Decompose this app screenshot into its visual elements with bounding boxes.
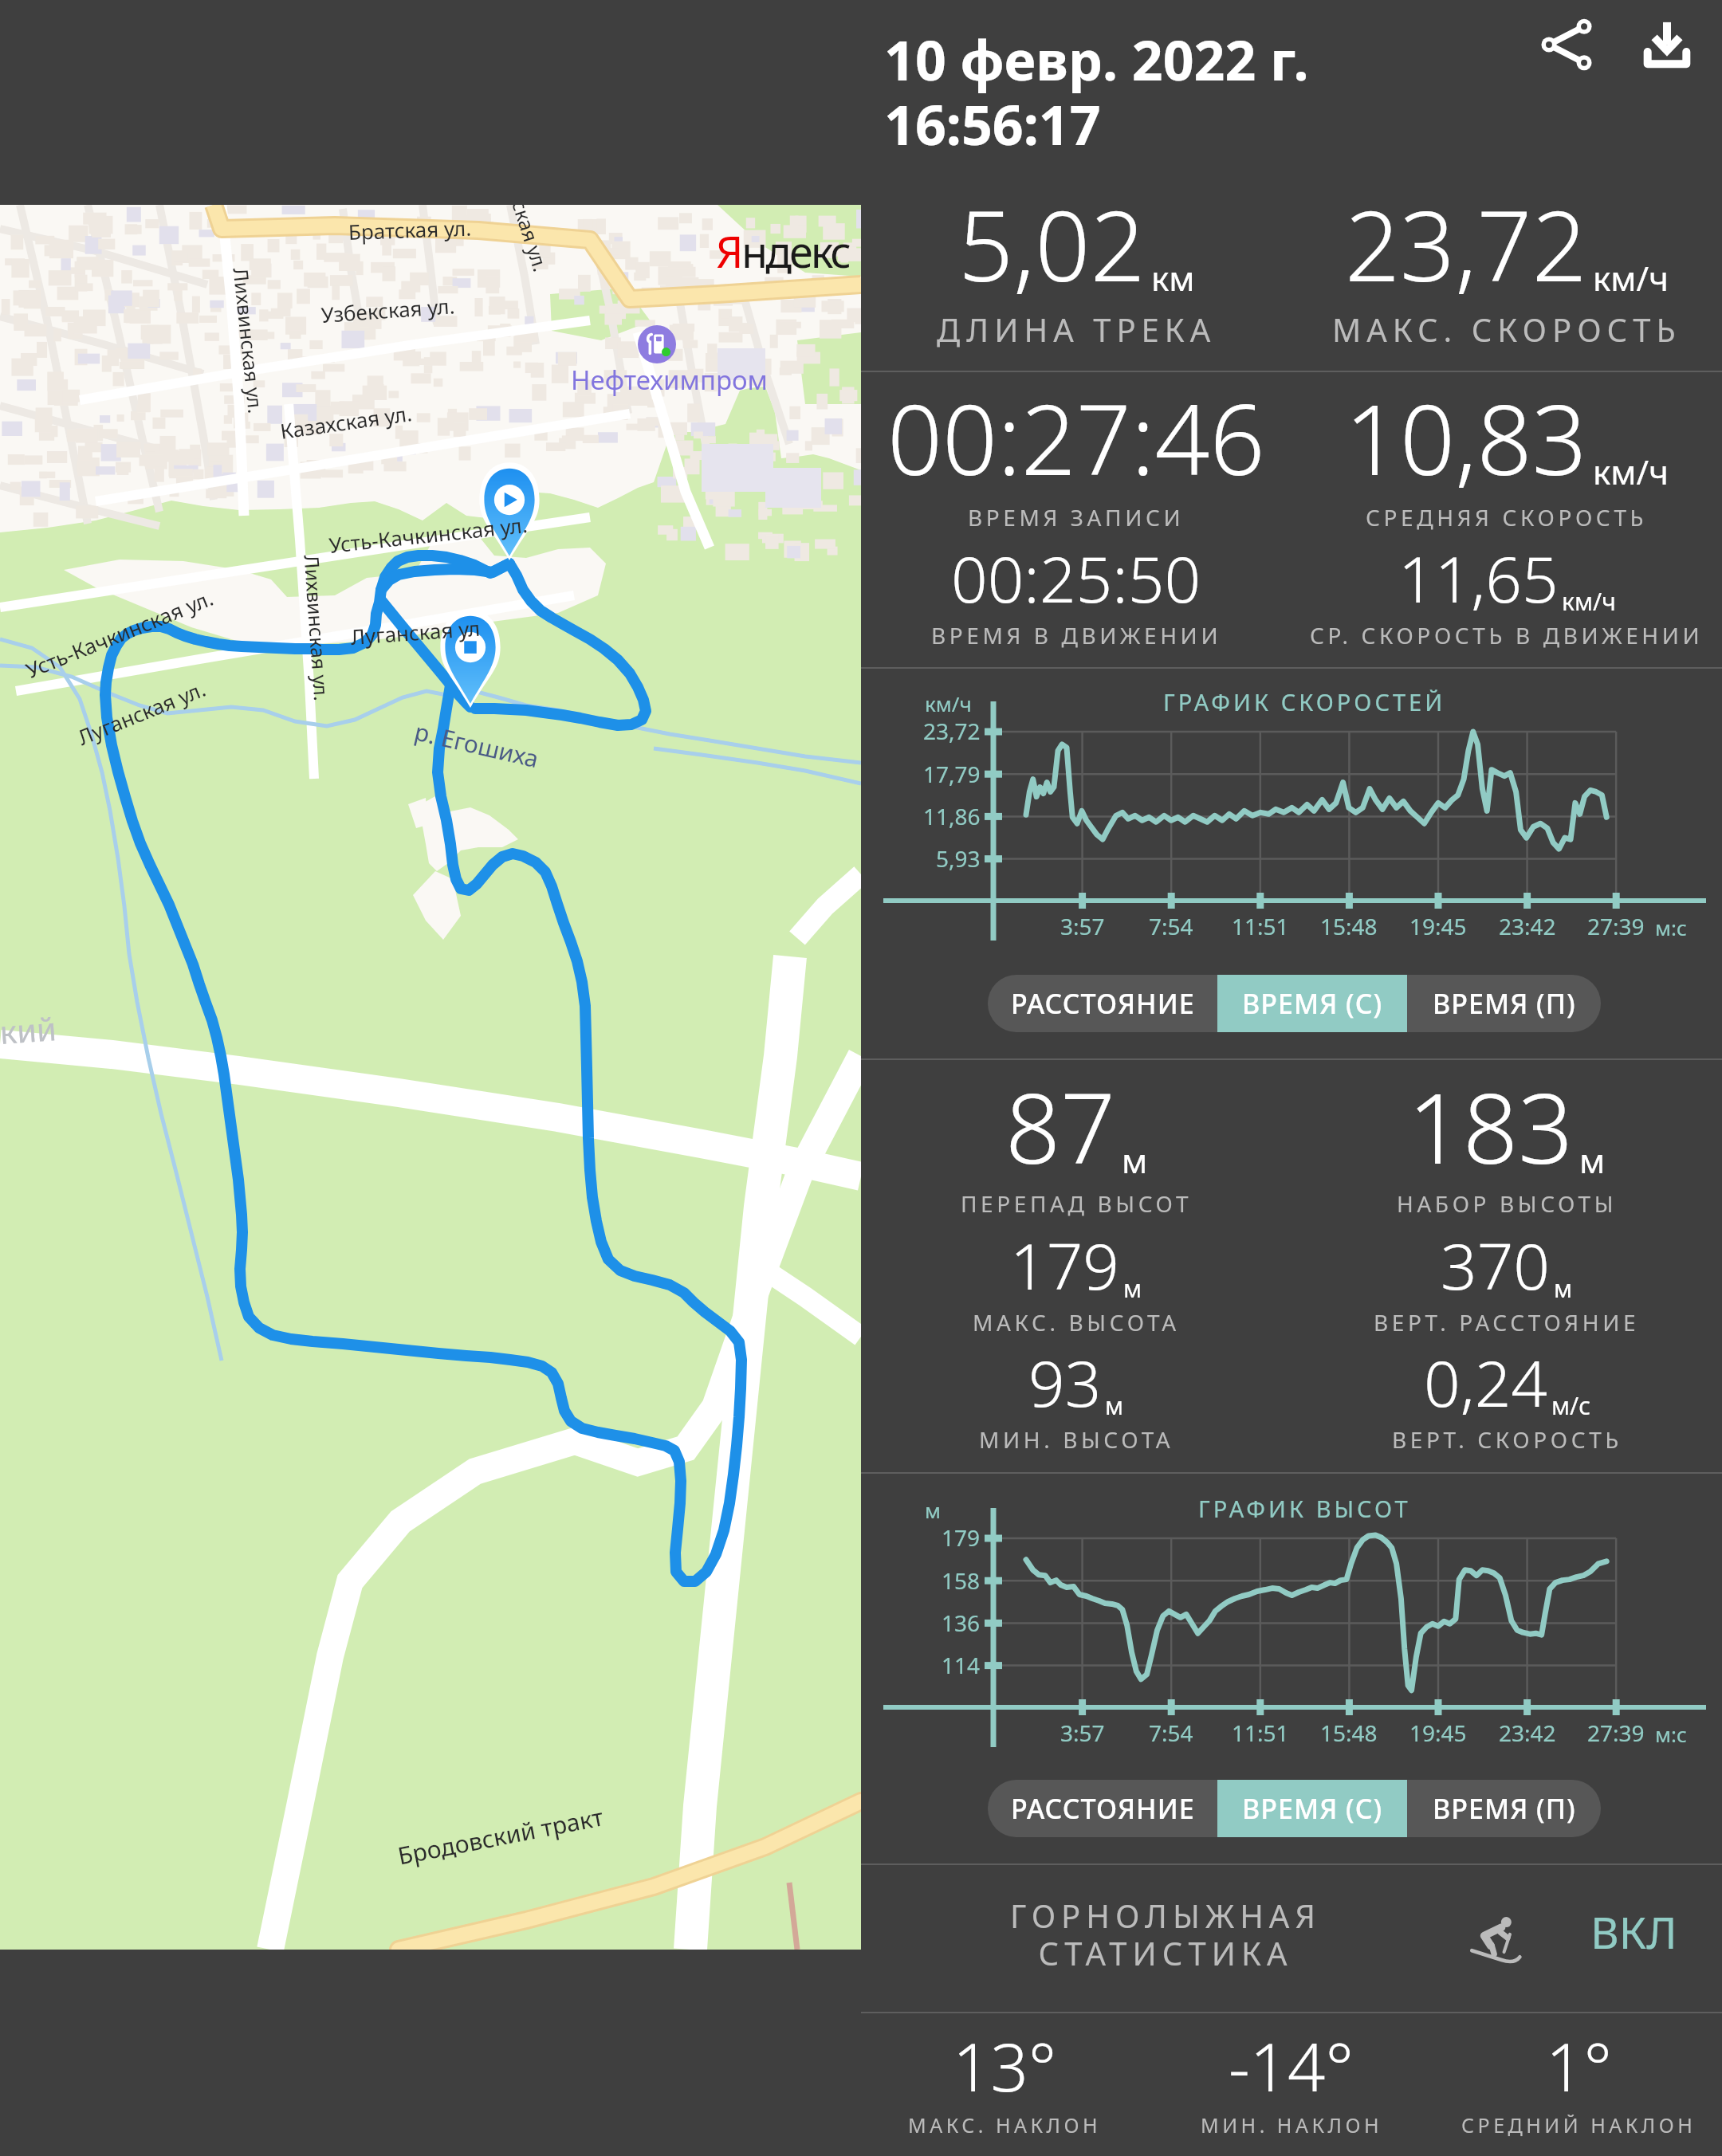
staticText: 179: [942, 1522, 981, 1553]
staticText: 10 февр. 2022 г. 16:56:17: [884, 22, 1309, 160]
button[interactable]: 00:25:50: [861, 526, 1291, 655]
staticText: м:с: [1655, 1720, 1687, 1748]
button[interactable]: 179: [861, 1213, 1291, 1342]
staticText: МАКС. НАКЛОН: [908, 2111, 1102, 2138]
staticText: Братская ул.: [348, 213, 472, 245]
button[interactable]: ВРЕМЯ (П): [1407, 1780, 1601, 1837]
staticText: -14°: [1229, 2021, 1354, 2111]
staticText: Лихвинская ул.: [228, 266, 270, 415]
staticText: 5,02: [958, 179, 1146, 310]
button[interactable]: 11,65: [1291, 526, 1722, 655]
staticText: 179: [1010, 1221, 1120, 1308]
staticText: м: [1122, 1137, 1148, 1183]
button[interactable]: 1°: [1435, 2014, 1722, 2146]
button[interactable]: 183: [1291, 1053, 1722, 1223]
button[interactable]: 370: [1291, 1213, 1722, 1342]
button[interactable]: 13°: [861, 2014, 1148, 2146]
button[interactable]: -14°: [1148, 2014, 1435, 2146]
staticText: 27:39: [1587, 911, 1645, 941]
staticText: 15:48: [1320, 1718, 1378, 1748]
staticText: м: [1105, 1389, 1124, 1422]
staticText: ПЕРЕПАД ВЫСОТ: [961, 1188, 1193, 1219]
button[interactable]: Скачать: [1619, 0, 1715, 92]
staticText: 87: [1005, 1061, 1116, 1192]
staticText: Лихвинская ул.: [298, 554, 336, 702]
staticText: 13°: [953, 2021, 1057, 2111]
button[interactable]: Карта трека: [0, 205, 861, 1950]
staticText: РАССТОЯНИЕ: [1011, 985, 1195, 1022]
staticText: ндекс: [741, 222, 849, 281]
staticText: 19:45: [1409, 1718, 1467, 1748]
button[interactable]: 10,83: [1291, 364, 1722, 537]
staticText: 11:51: [1232, 911, 1289, 941]
staticText: ВРЕМЯ (П): [1433, 985, 1576, 1022]
button[interactable]: РАССТОЯНИЕ: [988, 1780, 1217, 1837]
staticText: ВЕРТ. РАССТОЯНИЕ: [1374, 1307, 1640, 1337]
staticText: км/ч: [925, 689, 972, 717]
staticText: Узбекская ул.: [320, 291, 456, 328]
staticText: 17,79: [923, 759, 981, 789]
staticText: Нефтехимпром: [571, 362, 768, 398]
staticText: 23:42: [1499, 911, 1556, 941]
staticText: ВЕРТ. СКОРОСТЬ: [1392, 1424, 1622, 1455]
staticText: м: [1123, 1272, 1142, 1305]
button[interactable]: ВРЕМЯ (С): [1217, 1780, 1407, 1837]
staticText: МАКС. ВЫСОТА: [973, 1307, 1180, 1337]
staticText: 11,65: [1398, 534, 1559, 621]
staticText: 183: [1408, 1061, 1574, 1192]
staticText: 114: [942, 1650, 981, 1680]
button[interactable]: 23,72: [1291, 171, 1722, 355]
staticText: 5,93: [936, 843, 981, 874]
staticText: 93: [1028, 1338, 1102, 1425]
staticText: СРЕДНИЙ НАКЛОН: [1461, 2111, 1696, 2138]
staticText: 10,83: [1345, 372, 1587, 504]
staticText: МАКС. СКОРОСТЬ: [1332, 308, 1681, 351]
staticText: км/ч: [1562, 585, 1616, 618]
staticText: РАССТОЯНИЕ: [1011, 1790, 1195, 1827]
staticText: СРЕДНЯЯ СКОРОСТЬ: [1366, 502, 1648, 532]
button[interactable]: 87: [861, 1053, 1291, 1223]
staticText: ГРАФИК ВЫСОТ: [1198, 1493, 1411, 1524]
staticText: МИН. НАКЛОН: [1201, 2111, 1383, 2138]
staticText: ВРЕМЯ (П): [1433, 1790, 1576, 1827]
staticText: ВРЕМЯ ЗАПИСИ: [968, 502, 1185, 532]
staticText: 23:42: [1499, 1718, 1556, 1748]
staticText: кий: [0, 1006, 58, 1053]
staticText: 7:54: [1149, 911, 1193, 941]
button[interactable]: РАССТОЯНИЕ: [988, 975, 1217, 1032]
staticText: СР. СКОРОСТЬ В ДВИЖЕНИИ: [1310, 620, 1704, 650]
staticText: 15:48: [1320, 911, 1378, 941]
staticText: 158: [942, 1565, 981, 1596]
button[interactable]: 5,02: [861, 171, 1291, 355]
staticText: 370: [1441, 1221, 1551, 1308]
staticText: 3:57: [1060, 1718, 1105, 1748]
staticText: Усть-Качкинская ул.: [327, 510, 529, 559]
button[interactable]: Поделиться: [1519, 0, 1614, 92]
staticText: м:с: [1655, 913, 1687, 941]
staticText: м: [1579, 1137, 1606, 1183]
button[interactable]: ВРЕМЯ (С): [1217, 975, 1407, 1032]
staticText: км/ч: [1593, 255, 1669, 300]
staticText: Бродовский тракт: [395, 1800, 606, 1872]
staticText: 11:51: [1232, 1718, 1289, 1748]
button[interactable]: 93: [861, 1330, 1291, 1459]
staticText: км: [1151, 255, 1195, 300]
staticText: 1°: [1546, 2021, 1612, 2111]
staticText: 23,72: [1345, 179, 1587, 310]
button[interactable]: 0,24: [1291, 1330, 1722, 1459]
staticText: 3:57: [1060, 911, 1105, 941]
staticText: ская ул.: [506, 205, 555, 275]
staticText: 27:39: [1587, 1718, 1645, 1748]
staticText: 136: [942, 1608, 981, 1638]
button[interactable]: ГОРНОЛЫЖНАЯ СТАТИСТИКА: [861, 1863, 1722, 2012]
staticText: м: [925, 1496, 941, 1524]
staticText: 19:45: [1409, 911, 1467, 941]
staticText: Усть-Качкинская ул.: [22, 583, 218, 684]
staticText: м/с: [1551, 1389, 1590, 1422]
staticText: 00:25:50: [951, 534, 1201, 621]
button[interactable]: ВРЕМЯ (П): [1407, 975, 1601, 1032]
staticText: р. Егошиха: [412, 715, 542, 775]
staticText: 11,86: [923, 801, 981, 831]
button[interactable]: 00:27:46: [861, 364, 1291, 537]
staticText: ГОРНОЛЫЖНАЯ СТАТИСТИКА: [1010, 1894, 1321, 1975]
